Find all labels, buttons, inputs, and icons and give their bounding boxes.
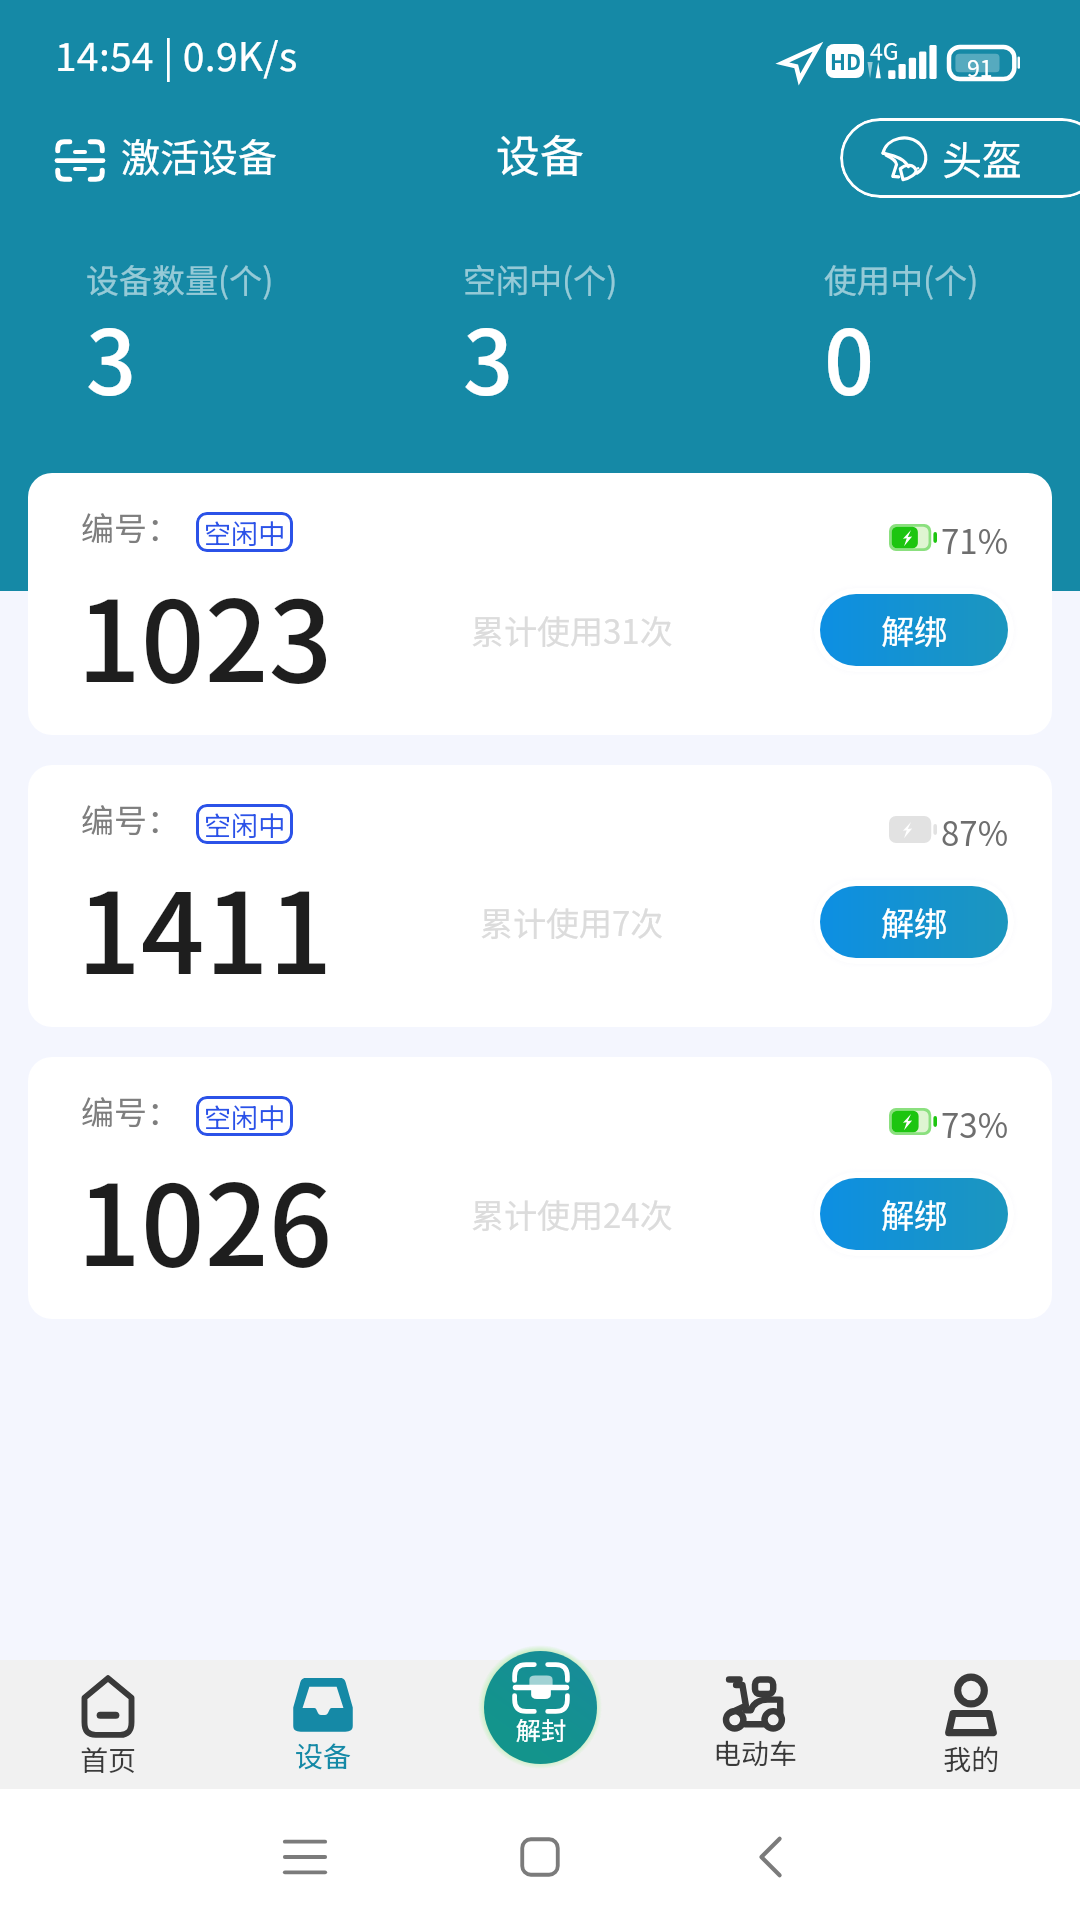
staticText: 4G xyxy=(870,33,899,66)
staticText: 14:54 | 0.9K/s xyxy=(55,26,298,82)
button[interactable]: 解绑 xyxy=(820,594,1008,666)
button[interactable]: 首页 xyxy=(48,1663,168,1785)
staticText: 我的 xyxy=(943,1738,1000,1779)
staticText: 解绑 xyxy=(881,606,947,654)
staticText: 编号： xyxy=(81,795,180,843)
staticText: 87% xyxy=(941,808,1009,856)
staticText: 编号： xyxy=(81,503,180,551)
button[interactable]: 解绑 xyxy=(820,886,1008,958)
staticText: 编号： xyxy=(81,1087,180,1135)
staticText: 首页 xyxy=(80,1739,137,1780)
button[interactable]: Recent apps xyxy=(281,1833,329,1881)
staticText: 3 xyxy=(463,293,514,420)
staticText: 设备 xyxy=(496,121,584,185)
staticText: 设备 xyxy=(295,1735,352,1776)
staticText: 1411 xyxy=(77,844,333,1006)
staticText: 设备数量(个) xyxy=(86,255,274,303)
staticText: 累计使用7次 xyxy=(480,898,664,946)
button[interactable]: 激活设备 xyxy=(55,132,278,188)
staticText: 解封 xyxy=(516,1711,567,1747)
button[interactable]: 解封 xyxy=(478,1645,602,1769)
staticText: 91 xyxy=(967,50,993,82)
staticText: 使用中(个) xyxy=(824,255,979,303)
staticText: 解绑 xyxy=(881,1190,947,1238)
staticText: 空闲中 xyxy=(204,805,285,844)
staticText: 0 xyxy=(824,293,875,420)
button[interactable]: 设备 xyxy=(263,1663,383,1785)
staticText: 71% xyxy=(941,516,1009,564)
button[interactable]: 编号： xyxy=(28,765,1052,1027)
staticText: 1026 xyxy=(77,1136,333,1298)
staticText: 电动车 xyxy=(713,1732,798,1773)
staticText: 头盔 xyxy=(942,129,1022,187)
staticText: 累计使用31次 xyxy=(471,606,673,654)
staticText: 1023 xyxy=(77,552,333,714)
button[interactable]: 我的 xyxy=(911,1663,1031,1785)
staticText: 累计使用24次 xyxy=(471,1190,673,1238)
button[interactable]: Back xyxy=(747,1833,795,1881)
staticText: HD xyxy=(830,46,861,76)
button[interactable]: 编号： xyxy=(28,473,1052,735)
staticText: 73% xyxy=(941,1100,1009,1148)
staticText: 空闲中 xyxy=(204,1097,285,1136)
button[interactable]: 解绑 xyxy=(820,1178,1008,1250)
staticText: 3 xyxy=(86,293,137,420)
staticText: 空闲中(个) xyxy=(463,255,618,303)
button[interactable]: 电动车 xyxy=(695,1663,815,1785)
staticText: 空闲中 xyxy=(204,513,285,552)
button[interactable]: Home xyxy=(516,1833,564,1881)
button[interactable]: 头盔 xyxy=(840,118,1080,198)
staticText: 激活设备 xyxy=(121,127,278,183)
button[interactable]: 编号： xyxy=(28,1057,1052,1319)
staticText: 解绑 xyxy=(881,898,947,946)
